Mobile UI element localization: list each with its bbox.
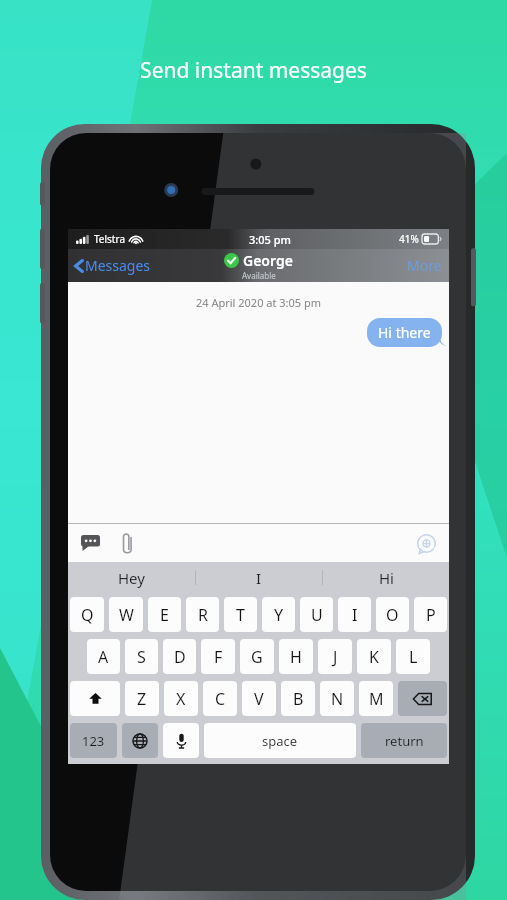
staticText: M — [369, 688, 384, 710]
staticText: R — [198, 604, 208, 626]
staticText: Q — [81, 604, 94, 626]
button[interactable]: Hi — [323, 562, 449, 593]
button[interactable]: T — [224, 597, 257, 632]
staticText: U — [311, 604, 323, 626]
staticText: Send instant messages — [0, 56, 507, 85]
button[interactable]: Hey — [68, 562, 195, 593]
staticText: F — [214, 646, 223, 668]
staticText: Hi — [379, 568, 394, 588]
staticText: P — [426, 604, 436, 626]
button[interactable]: Send — [412, 529, 440, 557]
button[interactable]: X — [164, 681, 198, 716]
staticText: D — [174, 646, 186, 668]
button[interactable]: S — [125, 639, 158, 674]
staticText: O — [386, 604, 399, 626]
staticText: I — [352, 604, 358, 626]
staticText: 41% — [399, 232, 419, 246]
staticText: 123 — [82, 732, 105, 750]
button[interactable]: F — [201, 639, 235, 674]
staticText: J — [333, 646, 338, 668]
button[interactable]: Messages — [73, 256, 151, 275]
button[interactable]: R — [186, 597, 219, 632]
button[interactable]: I — [196, 562, 322, 593]
staticText: space — [262, 732, 298, 750]
button[interactable]: Change language — [122, 723, 158, 758]
staticText: X — [176, 688, 186, 710]
staticText: B — [293, 688, 304, 710]
staticText: K — [369, 646, 379, 668]
button[interactable]: Dictate — [163, 723, 199, 758]
button[interactable]: Shift — [70, 681, 120, 716]
staticText: return — [385, 732, 424, 750]
staticText: Telstra — [94, 232, 126, 246]
staticText: Y — [274, 604, 284, 626]
staticText: Messages — [85, 256, 151, 275]
button[interactable]: Messages — [77, 530, 103, 556]
button[interactable]: G — [240, 639, 274, 674]
button[interactable]: A — [87, 639, 120, 674]
button[interactable]: N — [320, 681, 354, 716]
staticText: A — [98, 646, 109, 668]
button[interactable]: 123 — [70, 723, 117, 758]
staticText: S — [137, 646, 146, 668]
staticText: G — [251, 646, 263, 668]
button[interactable]: P — [414, 597, 447, 632]
staticText: E — [160, 604, 169, 626]
staticText: 24 April 2020 at 3:05 pm — [68, 295, 449, 310]
button[interactable]: Backspace — [398, 681, 447, 716]
button[interactable]: H — [279, 639, 313, 674]
staticText: C — [215, 688, 226, 710]
button[interactable]: U — [300, 597, 333, 632]
staticText: Hi there — [378, 323, 431, 342]
button[interactable]: Y — [262, 597, 295, 632]
button[interactable]: Z — [125, 681, 159, 716]
staticText: L — [409, 646, 418, 668]
button[interactable]: More — [407, 256, 442, 275]
button[interactable]: D — [163, 639, 196, 674]
button[interactable]: George — [224, 251, 293, 281]
button[interactable]: B — [281, 681, 315, 716]
staticText: 3:05 pm — [249, 232, 291, 247]
staticText: Z — [137, 688, 147, 710]
staticText: I — [256, 568, 262, 588]
button[interactable]: M — [359, 681, 393, 716]
button[interactable]: W — [109, 597, 143, 632]
button[interactable]: E — [148, 597, 181, 632]
button[interactable]: C — [203, 681, 237, 716]
staticText: V — [254, 688, 264, 710]
button[interactable]: K — [357, 639, 391, 674]
staticText: N — [331, 688, 344, 710]
staticText: Hey — [118, 568, 145, 588]
button[interactable]: Attach file — [115, 530, 141, 556]
button[interactable]: V — [242, 681, 276, 716]
button[interactable]: Hi there — [367, 318, 442, 347]
staticText: W — [119, 604, 134, 626]
button[interactable]: Q — [70, 597, 104, 632]
button[interactable]: space — [204, 723, 356, 758]
button[interactable]: O — [376, 597, 409, 632]
staticText: George — [243, 251, 293, 270]
button[interactable]: I — [338, 597, 371, 632]
button[interactable]: J — [318, 639, 352, 674]
staticText: Available — [242, 270, 276, 281]
staticText: H — [290, 646, 302, 668]
staticText: More — [407, 256, 442, 275]
button[interactable]: L — [396, 639, 430, 674]
staticText: T — [236, 604, 245, 626]
button[interactable]: return — [361, 723, 447, 758]
